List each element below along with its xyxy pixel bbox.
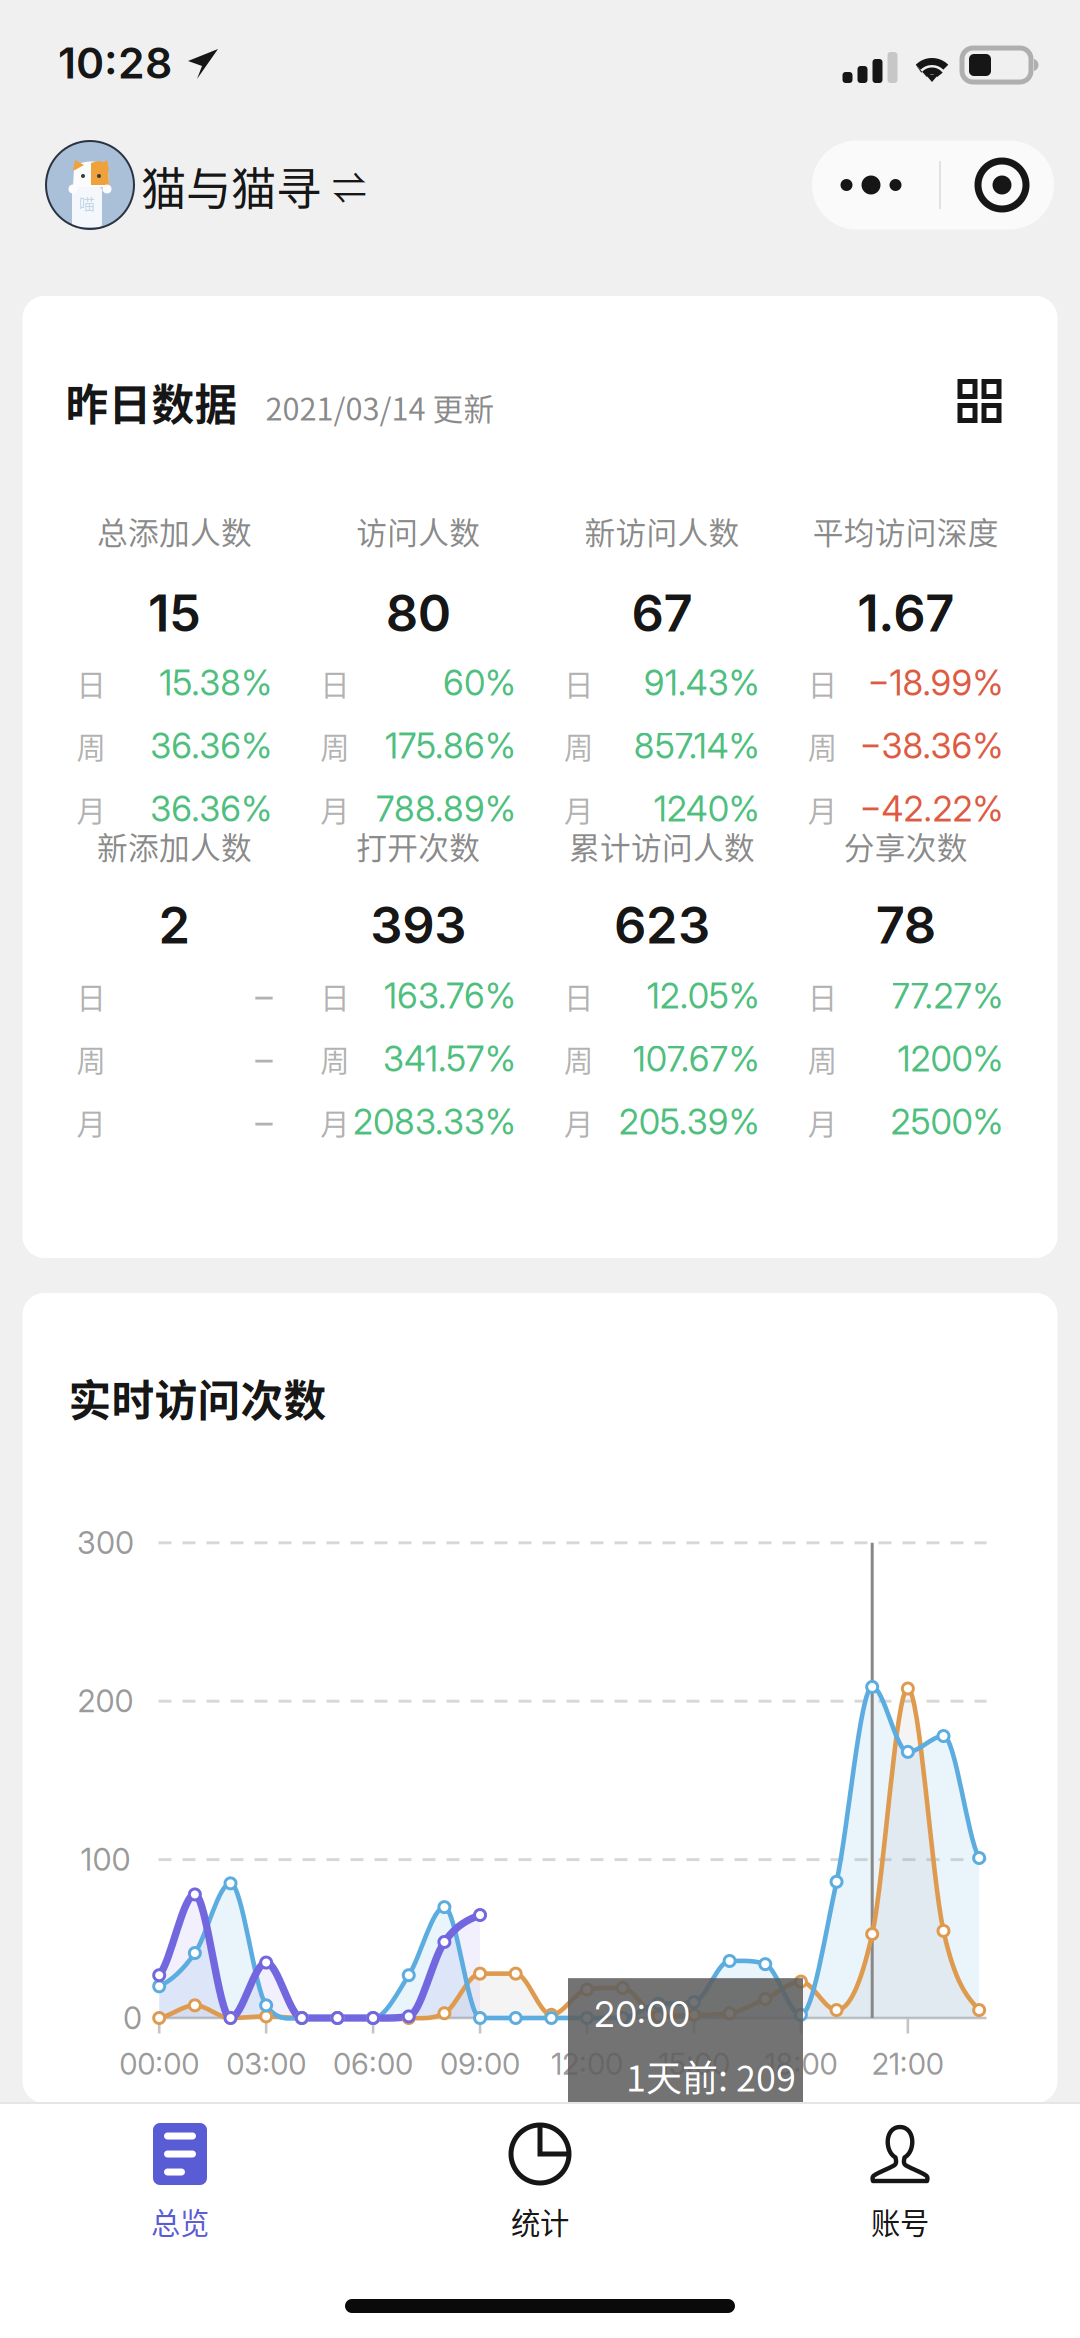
staticText: 日 bbox=[564, 662, 593, 704]
staticText: 78 bbox=[876, 894, 936, 956]
staticText: 日 bbox=[564, 975, 593, 1017]
staticText: – bbox=[255, 975, 272, 1017]
staticText: 月 bbox=[808, 1101, 837, 1143]
staticText: 日 bbox=[320, 975, 349, 1017]
staticText: – bbox=[255, 1038, 272, 1080]
staticText: 2500% bbox=[890, 1101, 1003, 1143]
staticText: 猫与猫寻 bbox=[141, 153, 321, 219]
staticText: 2083.33% bbox=[353, 1101, 516, 1143]
staticText: 91.43% bbox=[644, 662, 760, 704]
staticText: 日 bbox=[808, 662, 837, 704]
staticText: 107.67% bbox=[633, 1038, 760, 1080]
staticText: 周 bbox=[808, 1038, 837, 1080]
staticText: 2 bbox=[158, 894, 190, 956]
button[interactable]: Close mini program bbox=[976, 159, 1028, 211]
staticText: 09:00 bbox=[440, 2046, 520, 2082]
staticText: 21:00 bbox=[872, 2046, 944, 2082]
staticText: 新添加人数 bbox=[97, 824, 252, 868]
staticText: 日 bbox=[76, 975, 105, 1017]
staticText: 总览 bbox=[151, 2200, 209, 2242]
staticText: 实时访问次数 bbox=[68, 1367, 326, 1429]
staticText: 周 bbox=[808, 725, 837, 767]
staticText: 月 bbox=[76, 1101, 105, 1143]
staticText: 100 bbox=[80, 1841, 130, 1878]
staticText: 623 bbox=[614, 894, 710, 956]
staticText: 788.89% bbox=[376, 788, 516, 830]
button[interactable]: 账号 bbox=[720, 2104, 1080, 2252]
staticText: 日 bbox=[320, 662, 349, 704]
staticText: 36.36% bbox=[150, 725, 272, 767]
staticText: 周 bbox=[564, 725, 593, 767]
staticText: 2021/03/14 更新 bbox=[265, 385, 494, 429]
button[interactable]: 总览 bbox=[0, 2104, 360, 2252]
staticText: −42.22% bbox=[859, 788, 1003, 830]
button[interactable]: More bbox=[838, 174, 904, 196]
staticText: 周 bbox=[564, 1038, 593, 1080]
staticText: 平均访问深度 bbox=[813, 509, 999, 553]
staticText: 300 bbox=[77, 1524, 134, 1561]
staticText: 20:00 bbox=[594, 1992, 690, 2036]
staticText: 总添加人数 bbox=[97, 509, 252, 553]
staticText: 00:00 bbox=[119, 2046, 199, 2082]
staticText: 月 bbox=[564, 788, 593, 830]
staticText: 857.14% bbox=[634, 725, 760, 767]
staticText: 访问人数 bbox=[356, 509, 480, 553]
staticText: 200 bbox=[77, 1683, 133, 1720]
staticText: 月 bbox=[76, 788, 105, 830]
staticText: ⇌ bbox=[332, 161, 367, 211]
staticText: 账号 bbox=[871, 2200, 929, 2242]
staticText: −38.36% bbox=[859, 725, 1003, 767]
staticText: 341.57% bbox=[383, 1038, 516, 1080]
staticText: 36.36% bbox=[150, 788, 272, 830]
staticText: 15.38% bbox=[159, 662, 272, 704]
staticText: 统计 bbox=[511, 2200, 569, 2242]
staticText: 163.76% bbox=[384, 975, 516, 1017]
staticText: 累计访问人数 bbox=[569, 824, 755, 868]
staticText: 1240% bbox=[654, 788, 760, 830]
staticText: 06:00 bbox=[333, 2046, 413, 2082]
staticText: 周 bbox=[320, 1038, 349, 1080]
staticText: 12.05% bbox=[647, 975, 760, 1017]
staticText: 12:00 bbox=[551, 2046, 623, 2082]
staticText: 03:00 bbox=[226, 2046, 306, 2082]
staticText: 80 bbox=[386, 582, 451, 644]
staticText: 月 bbox=[564, 1101, 593, 1143]
staticText: 周 bbox=[76, 1038, 105, 1080]
button[interactable]: 统计 bbox=[360, 2104, 720, 2252]
staticText: 1天前: 209 bbox=[626, 2050, 796, 2102]
staticText: 1200% bbox=[897, 1038, 1003, 1080]
staticText: 60% bbox=[443, 662, 516, 704]
staticText: 月 bbox=[808, 788, 837, 830]
staticText: 18:00 bbox=[764, 2046, 837, 2082]
staticText: 393 bbox=[370, 894, 466, 956]
staticText: 15 bbox=[148, 582, 201, 644]
staticText: 205.39% bbox=[619, 1101, 760, 1143]
staticText: – bbox=[255, 1101, 272, 1143]
staticText: 77.27% bbox=[891, 975, 1003, 1017]
staticText: 67 bbox=[631, 582, 692, 644]
staticText: 10:28 bbox=[58, 37, 172, 89]
staticText: 月 bbox=[320, 788, 349, 830]
staticText: 0 bbox=[123, 1999, 142, 2036]
staticText: 月 bbox=[320, 1101, 349, 1143]
staticText: 日 bbox=[76, 662, 105, 704]
staticText: 周 bbox=[76, 725, 105, 767]
staticText: 15:00 bbox=[658, 2046, 730, 2082]
staticText: 新访问人数 bbox=[584, 509, 739, 553]
staticText: 打开次数 bbox=[356, 824, 480, 868]
staticText: 175.86% bbox=[385, 725, 516, 767]
staticText: 分享次数 bbox=[844, 824, 968, 868]
staticText: 昨日数据 bbox=[65, 371, 237, 433]
staticText: 1.67 bbox=[857, 582, 954, 644]
button[interactable]: Grid view bbox=[957, 379, 1001, 423]
staticText: 周 bbox=[320, 725, 349, 767]
staticText: 日 bbox=[808, 975, 837, 1017]
staticText: 喵 bbox=[79, 191, 95, 215]
staticText: −18.99% bbox=[867, 662, 1003, 704]
